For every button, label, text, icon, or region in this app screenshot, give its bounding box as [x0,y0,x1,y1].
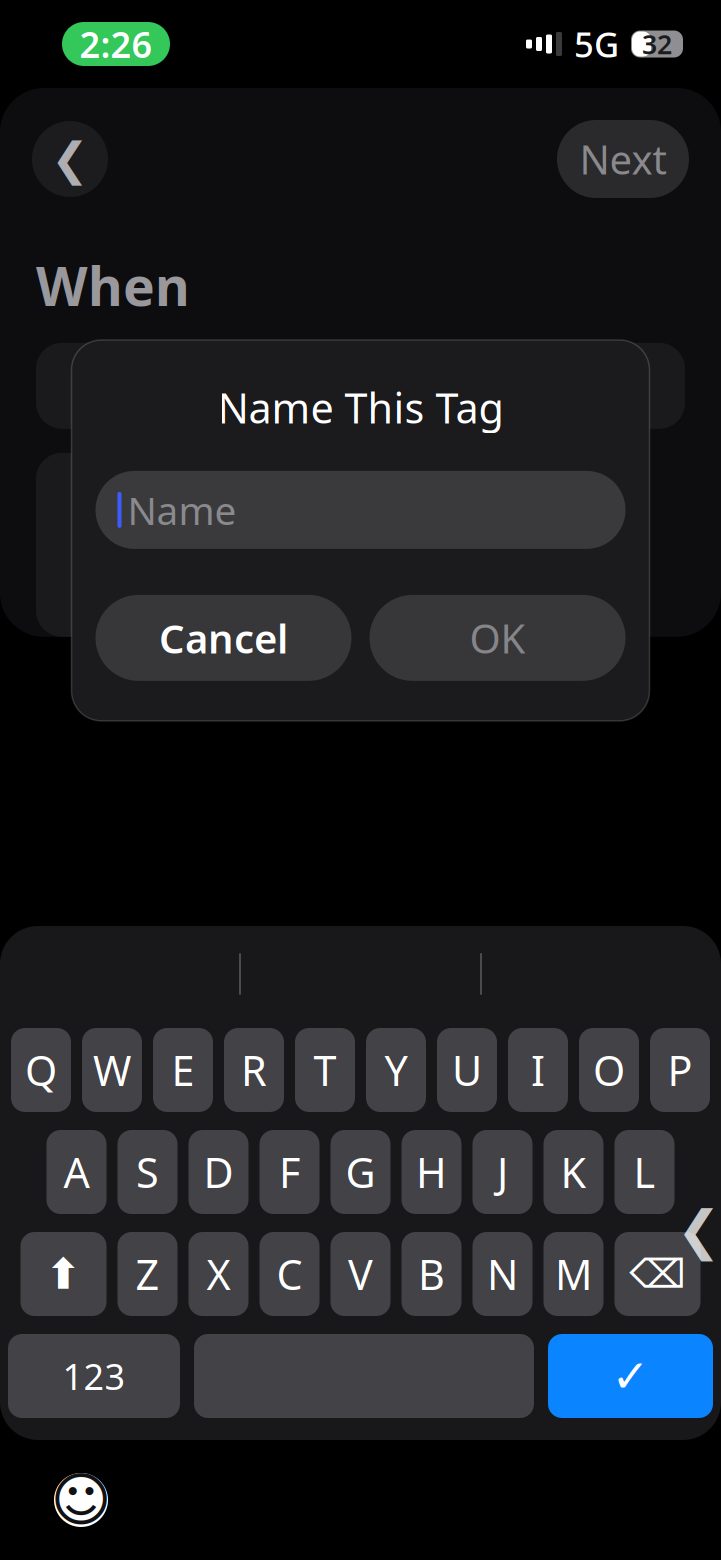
staticText: ☺ [50,1467,111,1533]
staticText: Z [135,1247,159,1301]
button[interactable]: E [153,1028,213,1112]
staticText: Now [70,360,152,411]
button[interactable]: A [46,1130,106,1214]
button[interactable]: Z [117,1232,177,1316]
staticText: A [63,1145,89,1199]
button[interactable]: Shift [20,1232,106,1316]
staticText: ⌫ [629,1251,686,1297]
button[interactable]: N [472,1232,532,1316]
staticText: F [279,1145,300,1199]
staticText: C [276,1247,302,1301]
staticText: Y [384,1043,407,1097]
button[interactable]: Q [11,1028,71,1112]
staticText: 123 [62,1352,125,1400]
staticText: 2:26 [79,20,152,68]
button[interactable]: O [579,1028,639,1112]
staticText: Name [127,484,236,535]
button[interactable]: R [224,1028,284,1112]
staticText: G [345,1145,375,1199]
button[interactable]: Delete [614,1232,700,1316]
button[interactable]: C [259,1232,319,1316]
staticText: 5G [574,21,619,67]
button[interactable]: F [259,1130,319,1214]
button[interactable]: J [472,1130,532,1214]
button[interactable]: 123 [8,1334,180,1418]
staticText: J [497,1145,508,1199]
staticText: Open [551,360,651,411]
staticText: Cancel [159,611,288,664]
button[interactable]: S [117,1130,177,1214]
button[interactable]: D [188,1130,248,1214]
staticText: E [171,1043,194,1097]
staticText: I [531,1043,545,1097]
staticText: N [487,1247,518,1301]
staticText: OK [469,611,525,664]
staticText: When [36,250,190,321]
staticText: Next [579,132,666,185]
staticText: S [136,1145,159,1199]
staticText: K [560,1145,586,1199]
button[interactable]: G [330,1130,390,1214]
button[interactable]: K [543,1130,603,1214]
staticText: ⬆ [45,1250,81,1298]
button[interactable]: V [330,1232,390,1316]
button[interactable]: T [295,1028,355,1112]
staticText: L [633,1145,655,1199]
button[interactable]: X [188,1232,248,1316]
button[interactable]: W [82,1028,142,1112]
button[interactable]: B [401,1232,461,1316]
staticText: ✓ [611,1350,649,1402]
staticText: ❮ [676,1200,721,1260]
button[interactable]: Next [557,120,689,198]
button[interactable]: P [650,1028,710,1112]
staticText: U [452,1043,482,1097]
button[interactable]: Emoji keyboard [50,1469,112,1531]
staticText: 32 [642,26,672,62]
staticText: P [667,1043,692,1097]
button[interactable]: I [508,1028,568,1112]
button[interactable]: U [437,1028,497,1112]
staticText: O [593,1043,625,1097]
button[interactable]: L [614,1130,674,1214]
staticText: ❮ [51,133,89,185]
staticText: H [416,1145,447,1199]
button[interactable]: Return [548,1334,713,1418]
staticText: X [206,1247,230,1301]
staticText: V [348,1247,373,1301]
button[interactable]: H [401,1130,461,1214]
button[interactable]: Cancel [95,595,351,681]
button[interactable]: Y [366,1028,426,1112]
staticText: R [241,1043,267,1097]
staticText: People [70,559,194,611]
staticText: Location [70,479,225,530]
staticText: Name This Tag [217,380,503,435]
staticText: T [313,1043,336,1097]
staticText: Q [25,1043,57,1097]
button[interactable]: Space [194,1334,534,1418]
button[interactable]: Back [32,121,108,197]
staticText: M [555,1247,592,1301]
button[interactable]: OK [369,595,625,681]
button[interactable]: M [543,1232,603,1316]
staticText: B [418,1247,445,1301]
staticText: W [93,1043,131,1097]
staticText: D [203,1145,233,1199]
